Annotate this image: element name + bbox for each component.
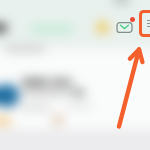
button[interactable]: Messages (116, 21, 133, 34)
button[interactable]: More options (139, 10, 150, 37)
